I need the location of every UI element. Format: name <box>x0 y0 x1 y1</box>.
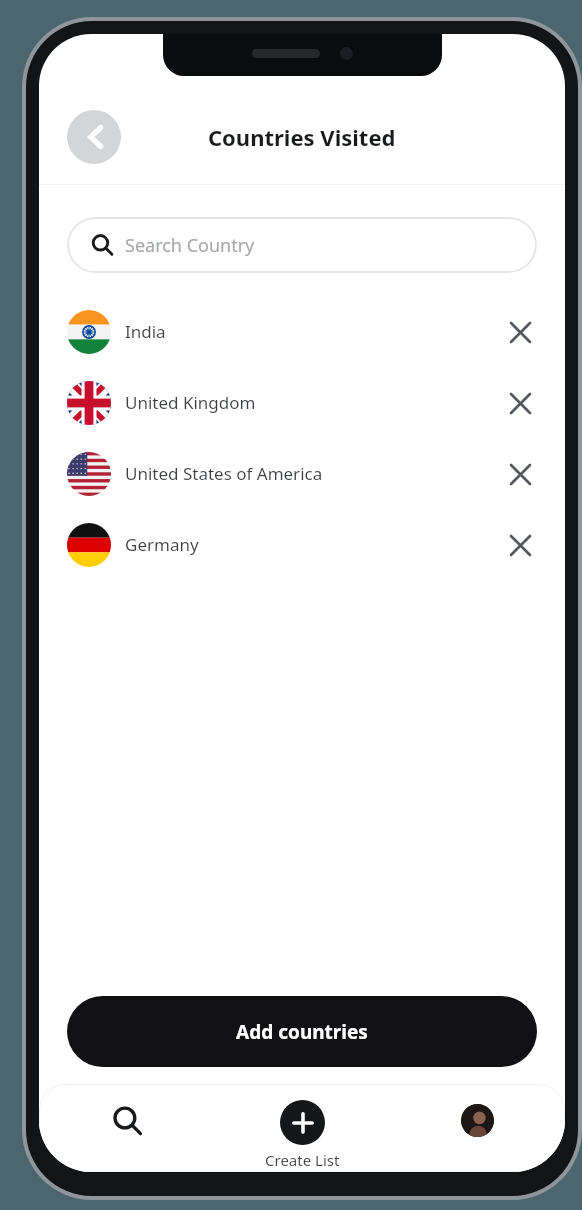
staticText: United States of America <box>125 462 503 485</box>
button[interactable]: Germany <box>39 509 565 580</box>
button[interactable]: Remove Germany <box>503 528 537 562</box>
button[interactable]: Search <box>39 1084 215 1172</box>
button[interactable]: United States of America <box>39 438 565 509</box>
button[interactable]: Create List <box>215 1084 390 1172</box>
button[interactable]: India <box>39 296 565 367</box>
staticText: Germany <box>125 533 503 556</box>
button[interactable]: Remove United Kingdom <box>503 386 537 420</box>
staticText: Add countries <box>236 1019 368 1045</box>
staticText: United Kingdom <box>125 391 503 414</box>
staticText: Create List <box>265 1150 340 1170</box>
staticText: Search Country <box>125 233 255 258</box>
button[interactable]: Add countries <box>67 996 537 1067</box>
staticText: India <box>125 320 503 343</box>
button[interactable]: Remove United States of America <box>503 457 537 491</box>
button[interactable]: United Kingdom <box>39 367 565 438</box>
button[interactable]: Remove India <box>503 315 537 349</box>
button[interactable]: Back <box>67 110 121 164</box>
button[interactable]: Profile <box>390 1084 565 1172</box>
staticText: Countries Visited <box>208 122 396 152</box>
button[interactable]: Search Country <box>67 217 537 273</box>
